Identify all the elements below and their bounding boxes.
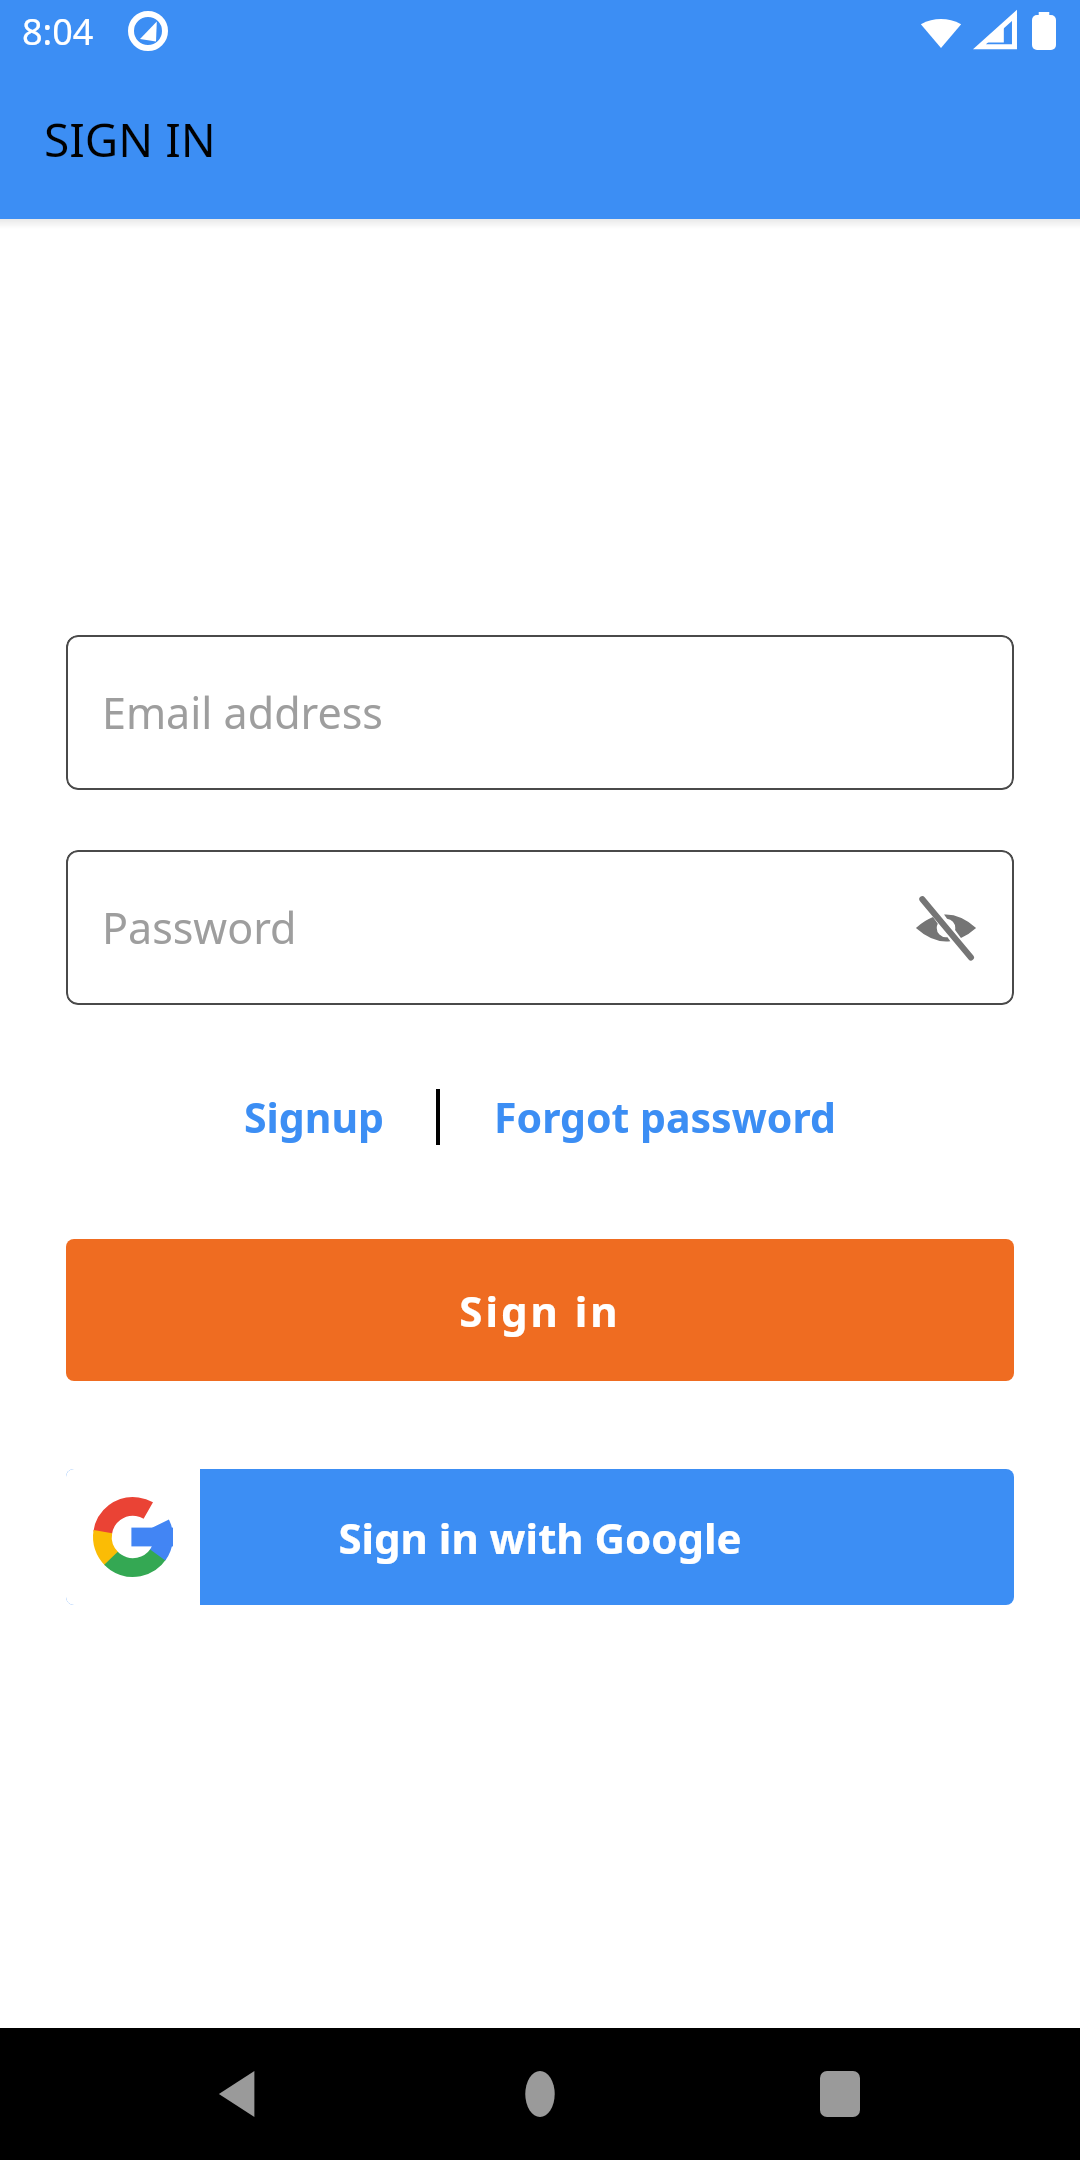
staticText: 8:04 bbox=[22, 7, 94, 56]
button[interactable]: Show password bbox=[906, 888, 986, 968]
staticText: Sign in bbox=[459, 1282, 621, 1339]
staticText: Sign in with Google bbox=[338, 1509, 742, 1566]
button[interactable]: Forgot password bbox=[494, 1089, 836, 1145]
button[interactable]: Recent apps bbox=[780, 2034, 900, 2154]
staticText: Email address bbox=[102, 683, 383, 742]
button[interactable]: Home bbox=[480, 2034, 600, 2154]
staticText: Forgot password bbox=[494, 1089, 836, 1145]
staticText: SIGN IN bbox=[44, 108, 216, 171]
staticText: Signup bbox=[244, 1089, 384, 1145]
button[interactable]: Email address bbox=[66, 635, 1014, 790]
button[interactable]: Password bbox=[66, 850, 1014, 1005]
button[interactable]: Back bbox=[180, 2034, 300, 2154]
staticText: Password bbox=[102, 898, 297, 957]
button[interactable]: Sign in bbox=[66, 1239, 1014, 1381]
button[interactable]: Sign in with Google bbox=[66, 1469, 1014, 1605]
button[interactable]: Signup bbox=[244, 1089, 384, 1145]
